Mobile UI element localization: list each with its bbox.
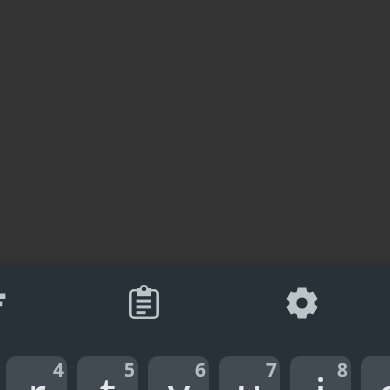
button[interactable]: Text style (0, 278, 23, 326)
staticText: u (236, 364, 263, 390)
button[interactable]: Clipboard (120, 278, 168, 326)
staticText: i (315, 364, 327, 390)
button[interactable]: Settings (278, 279, 326, 327)
button[interactable]: Key u (219, 356, 280, 390)
button[interactable]: Key t (77, 356, 138, 390)
staticText: 7 (266, 357, 277, 383)
staticText: 8 (337, 357, 348, 383)
staticText: r (28, 364, 46, 390)
staticText: 5 (124, 357, 135, 383)
button[interactable]: Key r (6, 356, 67, 390)
staticText: 6 (195, 357, 206, 383)
button[interactable]: Key y (148, 356, 209, 390)
staticText: y (168, 364, 190, 390)
staticText: o (378, 364, 390, 390)
staticText: t (100, 364, 116, 390)
button[interactable]: Key i (290, 356, 351, 390)
staticText: 4 (53, 357, 64, 383)
button[interactable]: Key o (361, 356, 390, 390)
